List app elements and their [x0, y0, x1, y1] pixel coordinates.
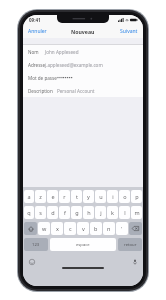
staticText: 123 [32, 242, 40, 248]
button[interactable]: x [51, 222, 63, 235]
staticText: •••••••• [57, 74, 73, 81]
staticText: g [75, 209, 79, 216]
button[interactable]: n [103, 222, 115, 235]
button[interactable]: Mot de passe [23, 71, 143, 84]
button[interactable]: ' [116, 222, 128, 235]
button[interactable]: r [59, 190, 70, 203]
staticText: 09:41 [29, 17, 41, 23]
button[interactable]: l [119, 206, 130, 219]
button[interactable]: Suivant [115, 25, 143, 38]
button[interactable]: m [131, 206, 142, 219]
button[interactable]: s [35, 206, 46, 219]
button[interactable]: t [71, 190, 82, 203]
button[interactable]: Backspace [129, 222, 142, 235]
button[interactable]: y [83, 190, 94, 203]
staticText: f [64, 209, 66, 216]
staticText: Description [28, 88, 53, 94]
staticText: s [39, 209, 42, 216]
button[interactable]: Annuler [23, 25, 52, 38]
button[interactable]: q [24, 206, 34, 219]
button[interactable]: Emoji [27, 257, 36, 266]
staticText: John Appleseed [45, 49, 79, 55]
staticText: z [39, 193, 42, 200]
staticText: e [51, 193, 55, 200]
button[interactable]: v [77, 222, 89, 235]
button[interactable]: h [83, 206, 94, 219]
staticText: Mot de passe [28, 75, 57, 81]
staticText: Nouveau [71, 28, 95, 35]
staticText: m [134, 209, 140, 216]
staticText: w [42, 225, 47, 232]
button[interactable]: espace [50, 238, 116, 251]
button[interactable]: w [38, 222, 50, 235]
staticText: j [100, 209, 102, 216]
staticText: y [87, 193, 90, 200]
staticText: Suivant [120, 28, 138, 35]
staticText: l [124, 209, 126, 216]
staticText: b [94, 225, 98, 232]
staticText: q [27, 209, 31, 216]
button[interactable]: Nom [23, 45, 143, 58]
staticText: x [56, 225, 59, 232]
button[interactable]: Adresse [23, 58, 143, 71]
staticText: t [76, 193, 78, 200]
button[interactable]: p [131, 190, 142, 203]
staticText: n [107, 225, 111, 232]
staticText: retour [124, 242, 137, 248]
staticText: espace [76, 242, 90, 248]
button[interactable]: g [71, 206, 82, 219]
staticText: c [69, 225, 72, 232]
button[interactable]: e [47, 190, 58, 203]
button[interactable]: i [107, 190, 118, 203]
button[interactable]: c [64, 222, 76, 235]
staticText: p [135, 193, 139, 200]
button[interactable]: d [47, 206, 58, 219]
staticText: h [87, 209, 91, 216]
staticText: Annuler [28, 28, 47, 35]
button[interactable]: Description [23, 84, 143, 97]
button[interactable]: retour [118, 238, 142, 251]
button[interactable]: b [90, 222, 102, 235]
staticText: ' [121, 225, 123, 232]
staticText: Nom [28, 49, 39, 55]
staticText: a [27, 193, 31, 200]
button[interactable]: a [24, 190, 34, 203]
staticText: u [99, 193, 103, 200]
staticText: i [112, 193, 114, 200]
staticText: o [123, 193, 127, 200]
button[interactable]: j [95, 206, 106, 219]
button[interactable]: u [95, 190, 106, 203]
button[interactable]: z [35, 190, 46, 203]
staticText: r [63, 193, 66, 200]
staticText: k [111, 209, 114, 216]
button[interactable]: 123 [24, 238, 48, 251]
staticText: v [82, 225, 85, 232]
button[interactable]: f [59, 206, 70, 219]
button[interactable]: k [107, 206, 118, 219]
staticText: d [51, 209, 55, 216]
button[interactable]: o [119, 190, 130, 203]
staticText: Personal Account [57, 88, 95, 94]
button[interactable]: Dictation [130, 257, 139, 266]
staticText: j.appleseed@example.com [45, 62, 103, 68]
staticText: Adresse [28, 62, 46, 68]
button[interactable]: Shift [24, 222, 37, 235]
